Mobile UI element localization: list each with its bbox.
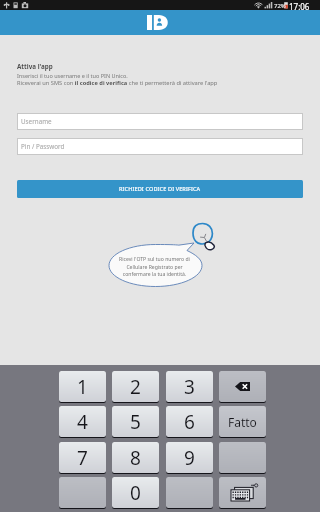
staticText: RICHIEDI CODICE DI VERIFICA [119, 185, 201, 193]
staticText: 4 [77, 409, 88, 435]
button[interactable]: RICHIEDI CODICE DI VERIFICA [17, 180, 303, 198]
button[interactable]: 3 [166, 371, 213, 403]
staticText: 6 [184, 409, 195, 435]
button[interactable]: 2 [112, 371, 159, 403]
staticText: Attiva l'app [17, 62, 53, 71]
staticText: 7 [77, 445, 88, 471]
staticText: 5 [130, 409, 141, 435]
button[interactable]: 0 [112, 477, 159, 509]
button[interactable]: Blank key [219, 442, 266, 474]
staticText: 9 [184, 445, 195, 471]
staticText: Username [21, 117, 52, 126]
button[interactable]: Change keyboard [219, 477, 266, 509]
staticText: 1 [77, 374, 88, 400]
button[interactable]: 1 [59, 371, 106, 403]
staticText: 3 [184, 374, 195, 400]
button[interactable]: 6 [166, 406, 213, 438]
button[interactable]: 5 [112, 406, 159, 438]
button[interactable]: 7 [59, 442, 106, 474]
button[interactable]: 4 [59, 406, 106, 438]
button[interactable]: 9 [166, 442, 213, 474]
staticText: Ricevi l'OTP sul tuo numero di Cellulare… [80, 256, 229, 277]
button[interactable]: Blank key [166, 477, 213, 509]
staticText: Riceverai un SMS con il codice di verifi… [17, 79, 218, 87]
button[interactable]: Blank key [59, 477, 106, 509]
button[interactable]: 8 [112, 442, 159, 474]
staticText: 8 [130, 445, 141, 471]
staticText: Pin / Password [21, 142, 65, 151]
button[interactable]: Backspace [219, 371, 266, 403]
button[interactable]: Pin / Password [21, 138, 303, 155]
staticText: 0 [130, 480, 141, 506]
staticText: 17:06 [289, 1, 310, 11]
button[interactable]: Username [21, 113, 303, 130]
staticText: 2 [130, 374, 141, 400]
staticText: Fatto [228, 414, 257, 430]
staticText: Inserisci il tuo username e il tuo PIN U… [17, 72, 128, 79]
staticText: 72% [274, 2, 286, 10]
button[interactable]: Fatto [219, 406, 266, 438]
